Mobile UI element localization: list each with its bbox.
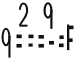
other: Scanned text fragment: 9 2 9 xyxy=(0,0,80,64)
